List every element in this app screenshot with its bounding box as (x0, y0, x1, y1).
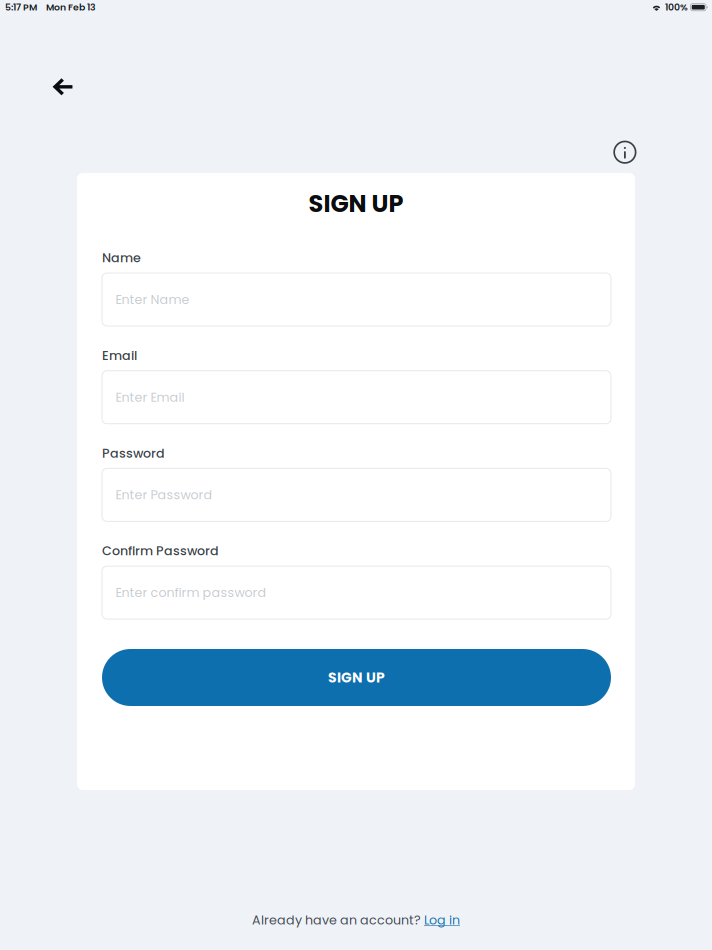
button[interactable]: Information (609, 136, 641, 168)
staticText: Email (102, 347, 137, 364)
button[interactable]: Confirm Password (102, 566, 611, 619)
button[interactable]: Password (102, 468, 611, 521)
staticText: Enter confirm password (115, 584, 266, 601)
staticText: Enter Email (115, 388, 184, 406)
button[interactable]: SIGN UP (102, 649, 611, 706)
staticText: Log in (424, 911, 460, 929)
button[interactable]: Email (102, 371, 611, 424)
staticText: 5:17 PM (5, 1, 37, 14)
staticText: Confirm Password (102, 542, 219, 560)
staticText: Password (102, 444, 165, 462)
button[interactable]: Name (102, 273, 611, 326)
staticText: Already have an account? (252, 911, 424, 929)
button[interactable]: Back (40, 65, 84, 109)
staticText: Name (102, 249, 141, 267)
staticText: Enter Password (115, 486, 212, 504)
staticText: Enter Name (115, 291, 189, 308)
staticText: Mon Feb 13 (46, 1, 96, 14)
button[interactable]: Log in (424, 911, 460, 929)
staticText: SIGN UP (328, 668, 385, 687)
staticText: 100% (665, 1, 688, 14)
staticText: SIGN UP (308, 187, 403, 220)
